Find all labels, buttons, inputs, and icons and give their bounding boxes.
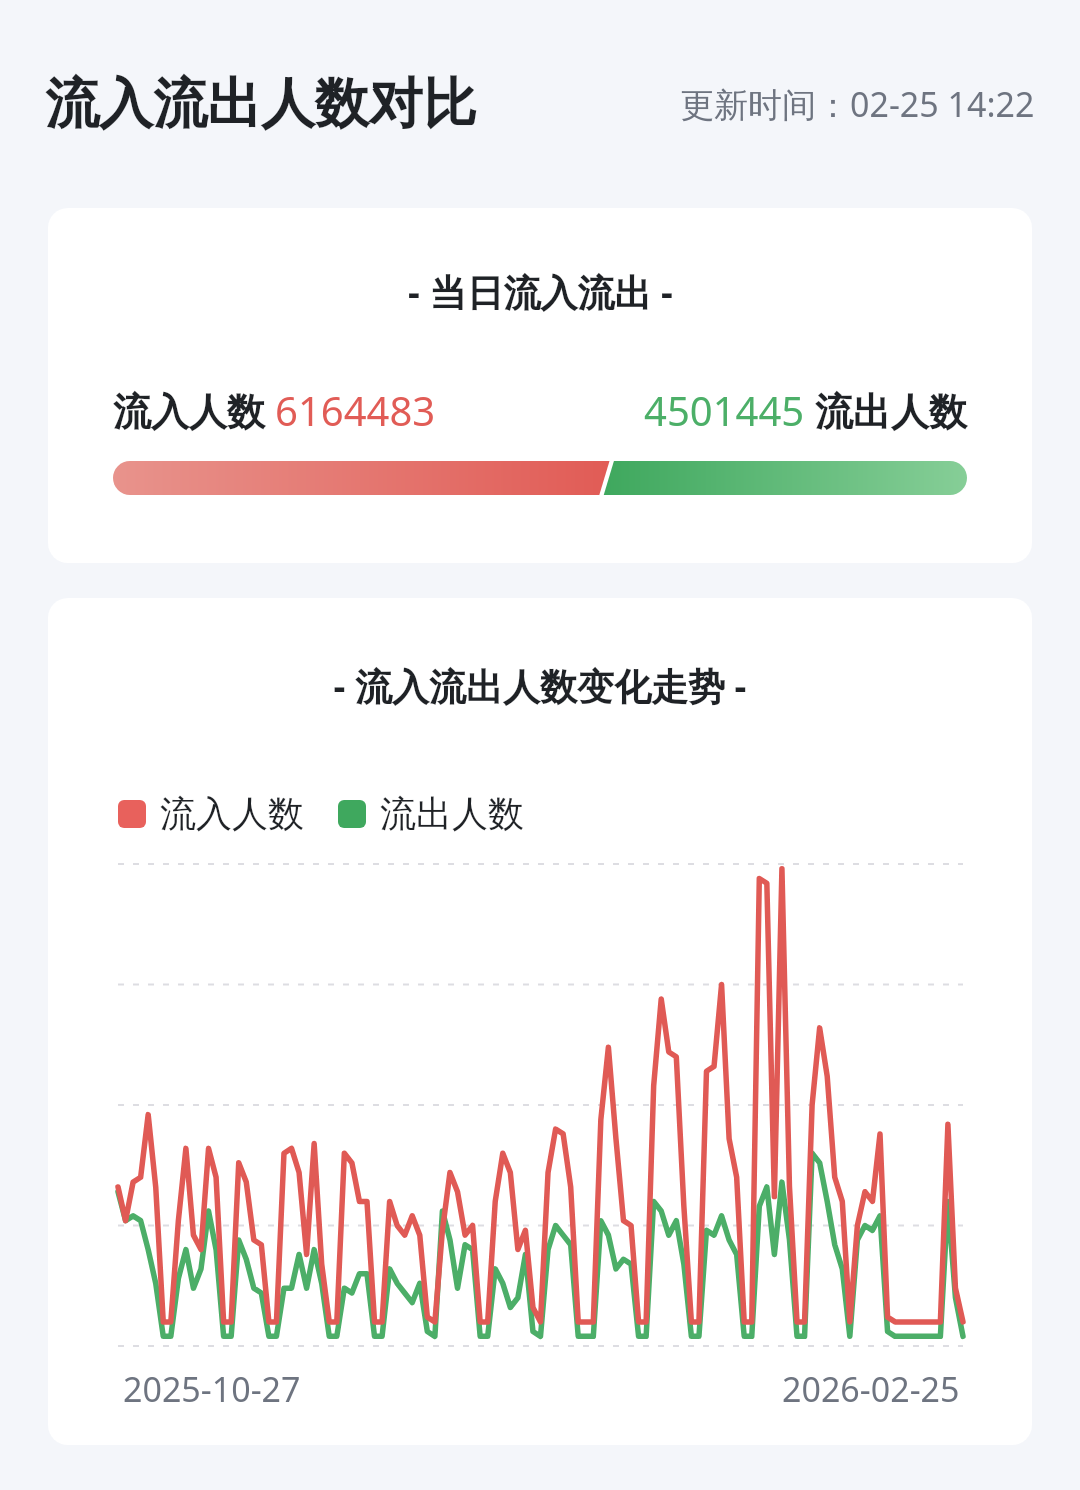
staticText: 更新时间：02-25 14:22 bbox=[680, 81, 1035, 127]
button[interactable]: 流入人数 bbox=[118, 791, 524, 836]
staticText: 2026-02-25 bbox=[782, 1366, 960, 1412]
staticText: 流出人数 bbox=[380, 791, 524, 836]
staticText: - 当日流入流出 - bbox=[408, 266, 673, 317]
staticText: 流入人数 bbox=[113, 384, 275, 436]
button[interactable] bbox=[113, 461, 967, 495]
staticText: 4501445 bbox=[644, 383, 805, 437]
button[interactable]: - 流入流出人数变化走势 - bbox=[48, 598, 1032, 1445]
staticText: - 流入流出人数变化走势 - bbox=[48, 660, 1032, 711]
staticText: 流入人数 bbox=[160, 791, 304, 836]
staticText: 流出人数 bbox=[805, 384, 967, 436]
button[interactable]: - 当日流入流出 - bbox=[48, 208, 1032, 563]
staticText: 6164483 bbox=[275, 383, 436, 437]
staticText: 2025-10-27 bbox=[123, 1366, 301, 1412]
staticText: 流入流出人数对比 bbox=[45, 70, 477, 138]
